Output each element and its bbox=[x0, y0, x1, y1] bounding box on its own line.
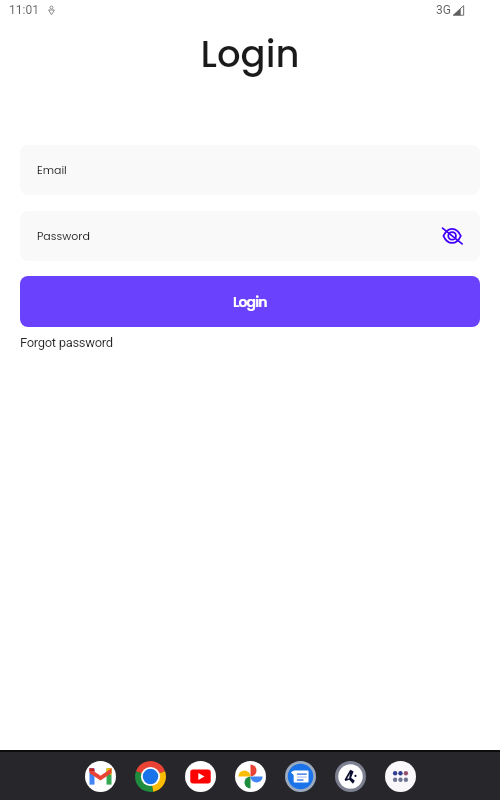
button[interactable]: Login bbox=[20, 276, 480, 327]
staticText: Email bbox=[37, 162, 67, 177]
staticText: Password bbox=[37, 228, 90, 243]
staticText: 11:01 bbox=[9, 3, 39, 17]
button[interactable]: Messages bbox=[275, 754, 325, 798]
button[interactable]: All apps bbox=[375, 754, 425, 798]
button[interactable]: Forgot password bbox=[20, 335, 113, 350]
staticText: Forgot password bbox=[20, 335, 113, 350]
button[interactable]: Photos bbox=[225, 754, 275, 798]
staticText: 3G bbox=[436, 3, 451, 17]
button[interactable]: Chrome bbox=[125, 754, 175, 798]
staticText: Login bbox=[0, 28, 500, 80]
staticText: Login bbox=[233, 292, 267, 312]
button[interactable]: Email bbox=[20, 145, 480, 195]
button[interactable]: App bbox=[325, 754, 375, 798]
button[interactable]: Gmail bbox=[75, 754, 125, 798]
button[interactable]: Hide password bbox=[441, 225, 463, 247]
button[interactable]: Password bbox=[20, 211, 480, 261]
button[interactable]: YouTube bbox=[175, 754, 225, 798]
